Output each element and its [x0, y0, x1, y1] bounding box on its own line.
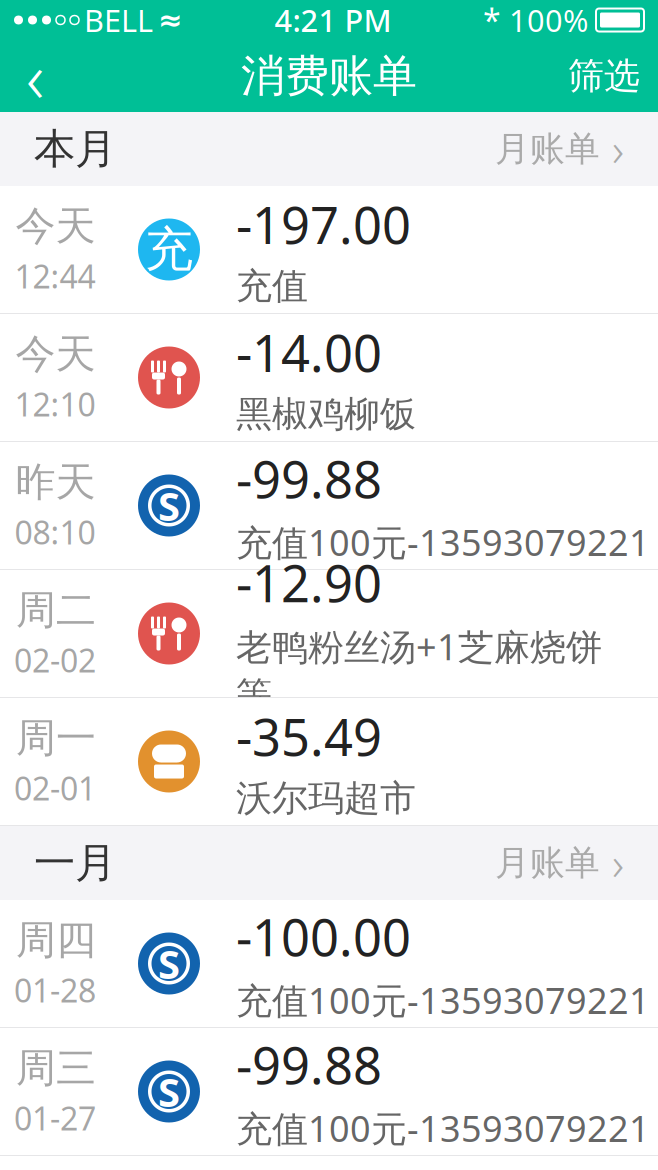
staticText: 4:21 PM [274, 0, 391, 40]
staticText: 周一 [16, 714, 96, 763]
staticText: 08:10 [14, 511, 95, 553]
staticText: 充 [145, 220, 193, 279]
staticText: S [158, 479, 180, 532]
button[interactable]: Back [0, 41, 70, 111]
button[interactable]: 周一 [0, 698, 658, 826]
staticText: 周二 [16, 586, 96, 635]
staticText: 一月 [34, 838, 116, 888]
button[interactable]: 今天 [0, 314, 658, 442]
staticText: -99.88 [236, 1031, 382, 1098]
staticText: 01-27 [14, 1097, 96, 1139]
button[interactable]: 周二 [0, 570, 658, 698]
staticText: 充值100元-13593079221 [236, 518, 650, 566]
staticText: 老鸭粉丝汤+1芝麻烧饼 等… [236, 622, 602, 718]
staticText: S [158, 1065, 180, 1118]
staticText: ‹ [26, 30, 44, 122]
staticText: -100.00 [236, 903, 411, 970]
staticText: 充值100元-13593079221 [236, 976, 650, 1024]
staticText: BELL [84, 0, 153, 40]
staticText: 周三 [16, 1044, 96, 1093]
staticText: 02-02 [14, 639, 96, 681]
staticText: -197.00 [236, 191, 411, 258]
staticText: ≈ [158, 3, 183, 37]
staticText: 12:10 [14, 383, 95, 425]
staticText: 筛选 [568, 54, 640, 98]
staticText: 本月 [34, 124, 116, 174]
staticText: * [483, 0, 501, 41]
staticText: 充值 [236, 264, 308, 308]
staticText: 昨天 [15, 458, 95, 507]
button[interactable]: 一月 [0, 826, 658, 900]
button[interactable]: 昨天 [0, 442, 658, 570]
staticText: 01-28 [14, 969, 96, 1011]
button[interactable]: 周三 [0, 1028, 658, 1156]
staticText: 月账单 [495, 128, 600, 170]
staticText: › [612, 119, 624, 179]
staticText: S [158, 937, 180, 990]
staticText: 沃尔玛超市 [236, 776, 416, 820]
staticText: 黑椒鸡柳饭 [236, 392, 416, 436]
staticText: 周四 [16, 916, 96, 965]
button[interactable]: 今天 [0, 186, 658, 314]
staticText: -12.90 [236, 549, 382, 616]
button[interactable]: 筛选 [550, 41, 658, 111]
staticText: -14.00 [236, 319, 382, 386]
staticText: 月账单 [495, 842, 600, 884]
button[interactable]: 本月 [0, 112, 658, 186]
staticText: 今天 [15, 202, 95, 251]
staticText: 消费账单 [241, 49, 417, 103]
staticText: 12:44 [14, 255, 95, 297]
staticText: 充值100元-13593079221 [236, 1104, 650, 1152]
staticText: -99.88 [236, 445, 382, 512]
staticText: -35.49 [236, 703, 382, 770]
staticText: 100% [509, 0, 588, 40]
button[interactable]: 周四 [0, 900, 658, 1028]
staticText: 今天 [15, 330, 95, 379]
staticText: › [612, 833, 624, 893]
staticText: 02-01 [14, 767, 96, 809]
